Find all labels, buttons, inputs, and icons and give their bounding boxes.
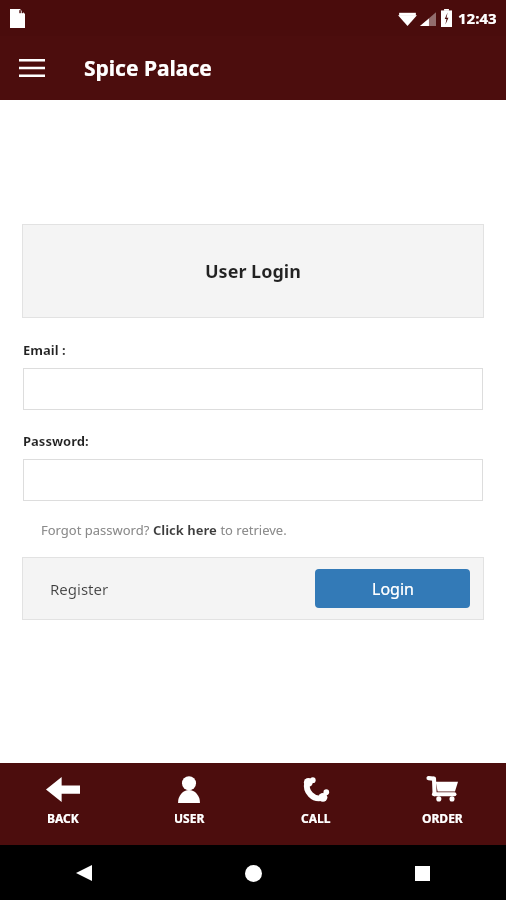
button[interactable]: BACK — [0, 763, 126, 845]
staticText: Login — [372, 578, 414, 600]
button[interactable]: Register — [36, 571, 123, 607]
button[interactable]: Recent apps — [398, 849, 446, 897]
staticText: Password: — [23, 432, 89, 450]
staticText: Click here — [153, 521, 217, 539]
button[interactable]: USER — [126, 763, 252, 845]
staticText: User Login — [205, 259, 301, 284]
button[interactable]: Forgot password? — [41, 521, 287, 539]
staticText: Forgot password? — [41, 521, 153, 539]
button[interactable]: Home — [229, 849, 277, 897]
button[interactable]: CALL — [252, 763, 379, 845]
button[interactable]: Password input field — [23, 459, 483, 501]
staticText: ORDER — [422, 810, 463, 826]
staticText: to retrieve. — [217, 521, 287, 539]
staticText: Spice Palace — [84, 54, 212, 83]
staticText: Register — [50, 579, 109, 599]
staticText: CALL — [301, 810, 331, 826]
button[interactable]: ORDER — [379, 763, 506, 845]
staticText: Email : — [23, 341, 66, 359]
button[interactable]: Open navigation menu — [10, 46, 54, 90]
button[interactable]: Email input field — [23, 368, 483, 410]
button[interactable]: Back — [60, 849, 108, 897]
button[interactable]: Login — [315, 569, 470, 608]
staticText: BACK — [47, 810, 79, 826]
staticText: 12:43 — [458, 8, 497, 28]
staticText: USER — [174, 810, 205, 826]
